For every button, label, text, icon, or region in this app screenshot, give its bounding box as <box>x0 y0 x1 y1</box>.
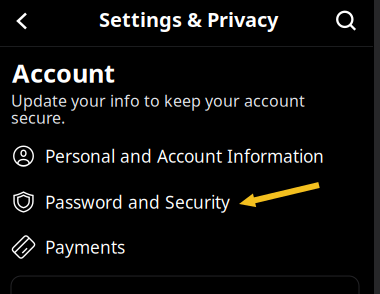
staticText: secure. <box>11 107 65 128</box>
button[interactable]: Password and Security <box>0 179 373 225</box>
staticText: Update your info to keep your account <box>11 90 305 111</box>
button[interactable]: Personal and Account Information <box>0 133 373 179</box>
button[interactable]: Back <box>0 0 44 43</box>
staticText: Payments <box>45 235 125 258</box>
staticText: Settings & Privacy <box>99 6 278 33</box>
staticText: Password and Security <box>45 190 230 213</box>
staticText: Account <box>12 56 115 90</box>
button[interactable]: Search <box>324 0 370 45</box>
button[interactable]: Payments <box>0 224 373 270</box>
staticText: Personal and Account Information <box>45 144 324 167</box>
